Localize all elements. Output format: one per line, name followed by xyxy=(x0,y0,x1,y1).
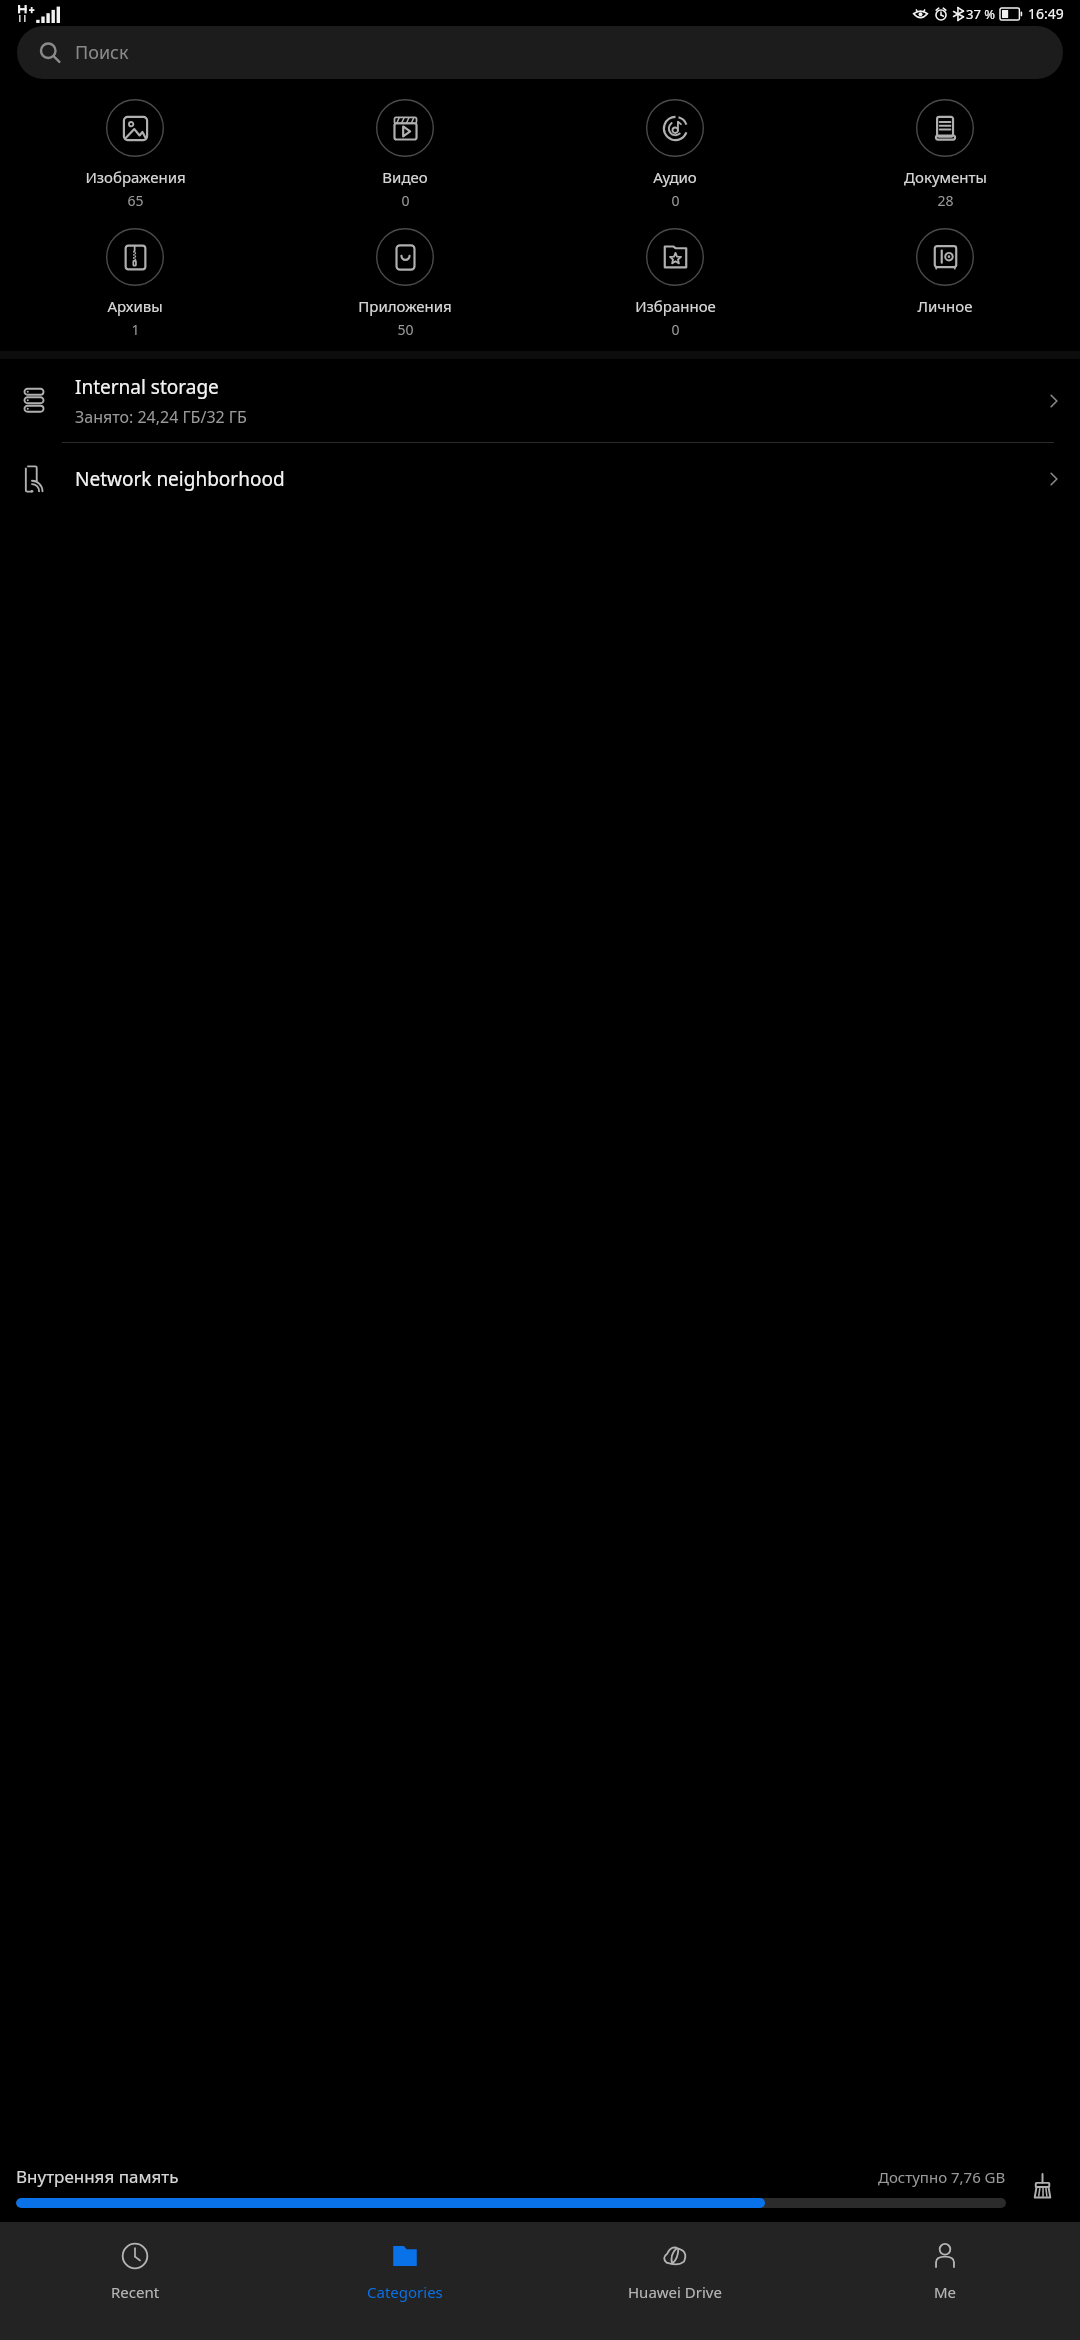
staticText: Внутренняя память xyxy=(16,2165,179,2188)
button[interactable]: Categories xyxy=(270,2222,540,2340)
button[interactable]: Аудио xyxy=(540,97,810,212)
staticText: Избранное xyxy=(635,296,716,316)
button[interactable]: Видео xyxy=(270,97,540,212)
staticText: 0 xyxy=(401,191,410,210)
button[interactable]: Приложения xyxy=(270,226,540,341)
staticText: Huawei Drive xyxy=(628,2282,722,2302)
button[interactable]: Network neighborhood xyxy=(0,443,1080,515)
staticText: 0 xyxy=(671,320,680,339)
staticText: Поиск xyxy=(75,40,129,65)
staticText: 50 xyxy=(397,320,414,339)
staticText: 28 xyxy=(937,191,954,210)
staticText: Изображения xyxy=(85,167,186,187)
staticText: Видео xyxy=(382,167,428,187)
staticText: Приложения xyxy=(358,296,452,316)
staticText: Занято: 24,24 ГБ/32 ГБ xyxy=(75,406,247,428)
button[interactable]: Избранное xyxy=(540,226,810,341)
button[interactable]: Recent xyxy=(0,2222,270,2340)
button[interactable]: Архивы xyxy=(0,226,270,341)
button[interactable]: Me xyxy=(810,2222,1080,2340)
staticText: Документы xyxy=(904,167,987,187)
staticText: Network neighborhood xyxy=(75,466,1045,492)
staticText: 0 xyxy=(671,191,680,210)
staticText: 65 xyxy=(127,191,144,210)
button[interactable]: Изображения xyxy=(0,97,270,212)
button[interactable]: Документы xyxy=(810,97,1080,212)
staticText: Me xyxy=(934,2282,957,2302)
staticText: Личное xyxy=(917,296,973,316)
staticText: Доступно 7,76 GB xyxy=(878,2167,1006,2187)
staticText: 1 xyxy=(131,320,140,339)
button[interactable]: Huawei Drive xyxy=(540,2222,810,2340)
button[interactable]: Поиск xyxy=(17,26,1063,79)
button[interactable]: Личное xyxy=(810,226,1080,340)
staticText: Аудио xyxy=(653,167,697,187)
staticText: 16:49 xyxy=(1028,4,1064,23)
staticText: Internal storage xyxy=(75,374,219,400)
button[interactable]: Clean up storage xyxy=(1020,2164,1064,2208)
staticText: 37 % xyxy=(966,5,996,23)
staticText: Recent xyxy=(111,2282,160,2302)
staticText: Архивы xyxy=(107,296,163,316)
staticText: Categories xyxy=(367,2282,443,2302)
button[interactable]: Internal storage xyxy=(0,359,1080,442)
